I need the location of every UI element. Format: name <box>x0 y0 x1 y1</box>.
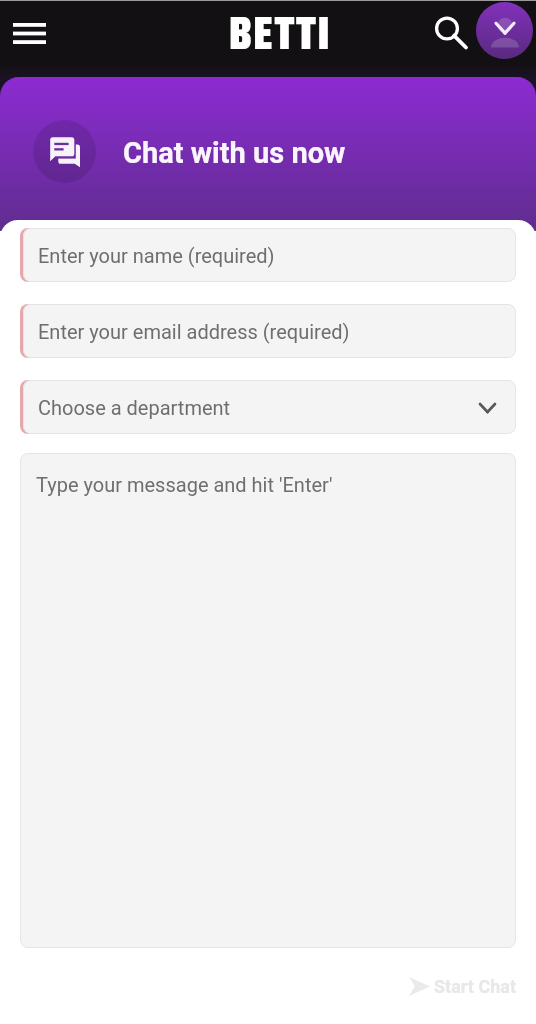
button[interactable]: Enter your name (required) <box>23 228 516 282</box>
staticText: Enter your email address (required) <box>38 320 350 343</box>
button[interactable]: Account <box>476 2 533 59</box>
staticText: Start Chat <box>434 976 516 997</box>
button[interactable]: Search <box>429 11 471 53</box>
button[interactable]: Choose a department <box>23 380 516 434</box>
staticText: BETTI <box>229 0 332 61</box>
staticText: Chat with us now <box>123 136 346 170</box>
button[interactable]: Enter your email address (required) <box>23 304 516 358</box>
button[interactable]: Menu <box>0 0 58 64</box>
staticText: Enter your name (required) <box>38 244 275 267</box>
staticText: Type your message and hit 'Enter' <box>36 473 333 496</box>
button[interactable]: Chat with us now <box>0 77 536 231</box>
button[interactable]: Start Chat <box>20 976 516 997</box>
staticText: Choose a department <box>38 396 231 419</box>
button[interactable]: Type your message and hit 'Enter' <box>20 453 516 948</box>
